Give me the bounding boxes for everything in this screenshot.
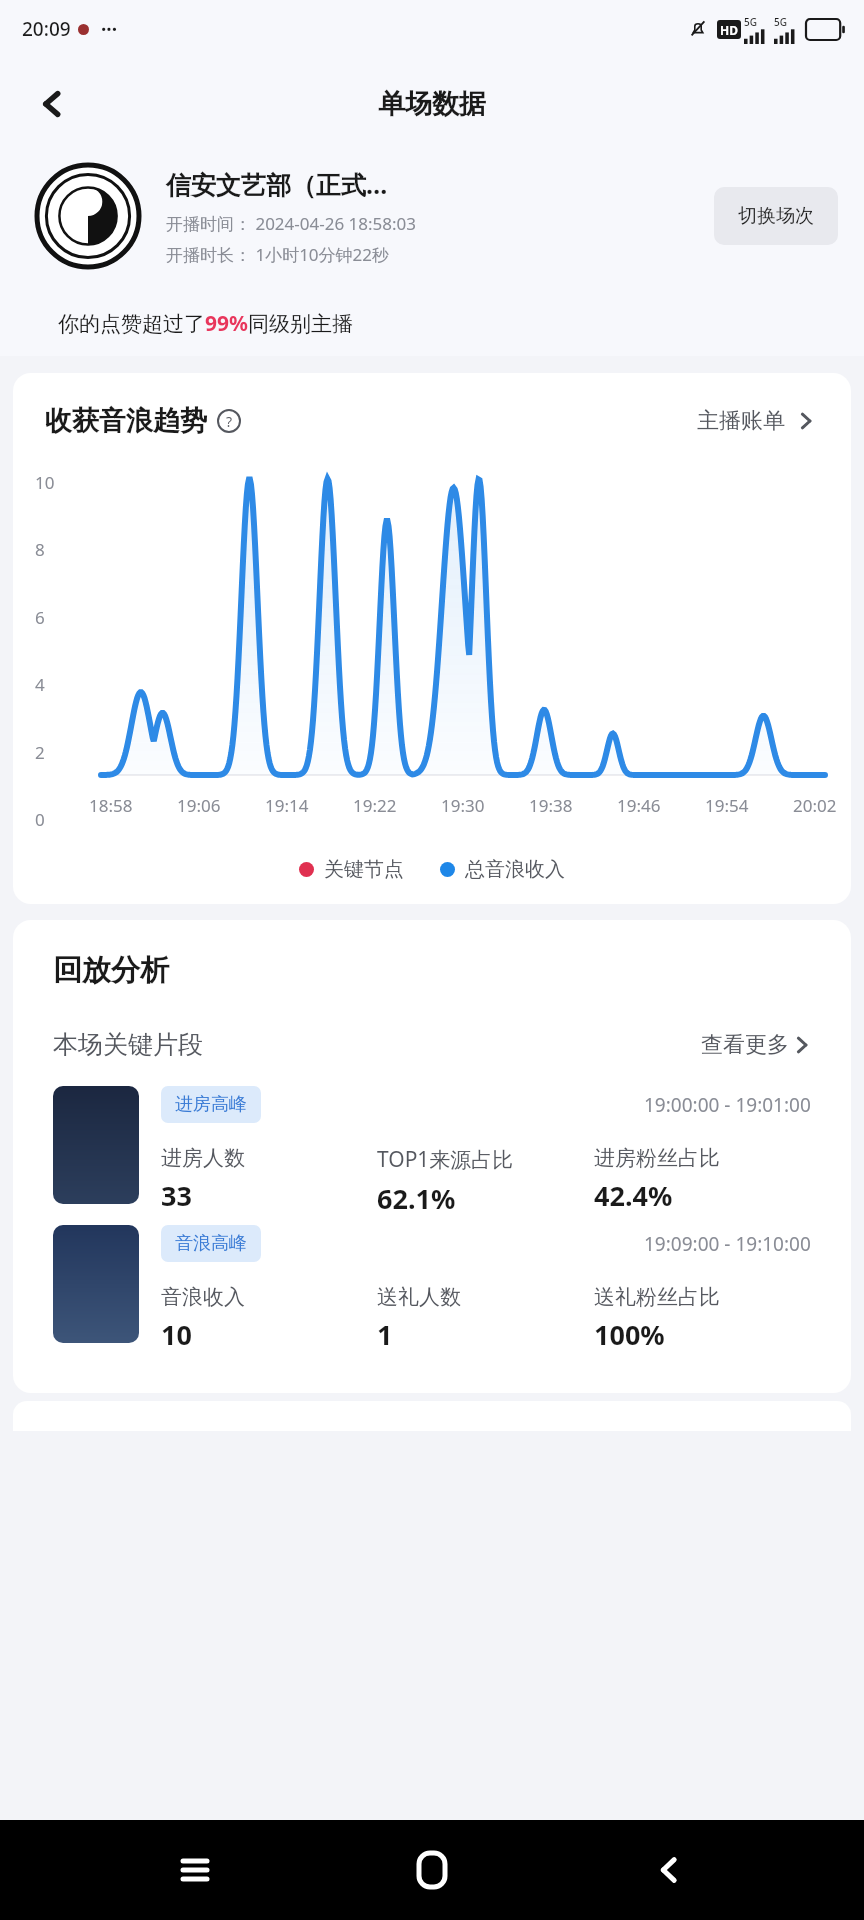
staticText: 10 — [161, 1316, 192, 1353]
staticText: 0 — [35, 808, 45, 831]
staticText: 62.1% — [377, 1180, 456, 1217]
button[interactable]: 查看更多 — [701, 1031, 811, 1059]
staticText: 信安文艺部（正式… — [166, 167, 388, 201]
staticText: 本场关键片段 — [53, 1029, 203, 1060]
staticText: HD — [720, 22, 738, 38]
button[interactable]: Recents — [153, 1828, 237, 1912]
staticText: 19:54 — [705, 794, 749, 817]
staticText: 19:38 — [529, 794, 573, 817]
staticText: 18:58 — [89, 794, 133, 817]
staticText: 19:22 — [353, 794, 397, 817]
staticText: 19:30 — [441, 794, 485, 817]
staticText: 33 — [161, 1177, 192, 1214]
staticText: 单场数据 — [378, 87, 486, 121]
button[interactable]: 切换场次 — [714, 187, 838, 245]
staticText: 你的点赞超过了99%同级别主播 — [58, 309, 353, 338]
staticText: 8 — [35, 538, 45, 561]
staticText: 5G — [774, 15, 787, 29]
button[interactable]: 进房高峰 — [53, 1086, 811, 1217]
button[interactable]: Back — [26, 78, 78, 130]
staticText: 4 — [35, 673, 45, 696]
button[interactable]: Help — [216, 408, 242, 434]
staticText: 42.4% — [594, 1177, 673, 1214]
button[interactable]: 主播账单 — [693, 403, 819, 439]
staticText: 2 — [35, 741, 45, 764]
staticText: 19:14 — [265, 794, 309, 817]
staticText: 1 — [377, 1316, 393, 1353]
staticText: TOP1来源占比 — [377, 1145, 514, 1174]
staticText: 19:00:00 - 19:01:00 — [644, 1092, 811, 1118]
button[interactable]: Back — [627, 1828, 711, 1912]
staticText: 进房高峰 — [175, 1093, 247, 1116]
staticText: 19:09:00 - 19:10:00 — [644, 1231, 811, 1257]
staticText: 总音浪收入 — [465, 857, 565, 882]
staticText: 主播账单 — [697, 407, 785, 435]
staticText: 10 — [35, 471, 55, 494]
staticText: ··· — [101, 16, 118, 42]
staticText: 音浪高峰 — [175, 1232, 247, 1255]
staticText: 进房人数 — [161, 1145, 245, 1171]
button[interactable]: Home — [390, 1828, 474, 1912]
staticText: 6 — [35, 606, 45, 629]
button[interactable]: 音浪高峰 — [53, 1225, 811, 1353]
staticText: 开播时长： 1小时10分钟22秒 — [166, 243, 390, 266]
staticText: ? — [226, 412, 233, 431]
staticText: 送礼粉丝占比 — [594, 1284, 720, 1310]
staticText: 收获音浪趋势 — [45, 404, 207, 438]
staticText: 进房粉丝占比 — [594, 1145, 720, 1171]
staticText: 5G — [744, 15, 757, 29]
staticText: 开播时间： 2024-04-26 18:58:03 — [166, 212, 417, 235]
staticText: 音浪收入 — [161, 1284, 245, 1310]
staticText: 切换场次 — [738, 204, 814, 228]
staticText: 19:46 — [617, 794, 661, 817]
staticText: 查看更多 — [701, 1031, 789, 1059]
staticText: 20:02 — [793, 794, 837, 817]
staticText: 100% — [594, 1316, 665, 1353]
staticText: 19:06 — [177, 794, 221, 817]
staticText: 回放分析 — [53, 952, 169, 989]
staticText: 送礼人数 — [377, 1284, 461, 1310]
staticText: 关键节点 — [324, 857, 404, 882]
staticText: 20:09 — [22, 16, 71, 42]
